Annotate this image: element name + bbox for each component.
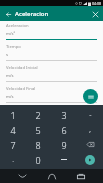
staticText: Aceleracion [6, 23, 29, 29]
staticText: 7 [10, 139, 16, 151]
staticText: , [89, 125, 91, 135]
button[interactable]: Back [3, 9, 13, 19]
staticText: 6 [61, 124, 67, 136]
button[interactable]: Back [14, 169, 30, 183]
staticText: m/s [6, 94, 14, 100]
staticText: 9 [61, 139, 67, 151]
staticText: 04:08 [92, 1, 101, 6]
staticText: m/s² [6, 31, 15, 37]
button[interactable]: Close [90, 9, 100, 19]
staticText: Aceleracion [15, 10, 49, 18]
button[interactable]: Backspace [77, 137, 103, 152]
button[interactable]: Calculate [83, 89, 98, 104]
button[interactable]: . [0, 152, 25, 167]
button[interactable]: Recents [73, 169, 89, 183]
button[interactable]: Enter [77, 152, 103, 167]
staticText: 4 [10, 124, 16, 136]
staticText: 5 [35, 124, 41, 136]
button[interactable]: 3 [51, 107, 77, 122]
button[interactable] [51, 152, 77, 167]
button[interactable]: 0 [25, 152, 51, 167]
button[interactable]: 5 [25, 122, 51, 137]
staticText: 3 [61, 109, 67, 121]
staticText: Velocidad Inicial [6, 65, 38, 71]
button[interactable]: 1 [0, 107, 25, 122]
staticText: 2 [35, 109, 41, 121]
button[interactable]: , [77, 122, 103, 137]
staticText: 8 [35, 139, 41, 151]
staticText: Velocidad Final [6, 86, 36, 92]
staticText: m/s [6, 73, 14, 79]
button[interactable]: 2 [25, 107, 51, 122]
button[interactable]: Velocidad Final [6, 86, 97, 103]
button[interactable]: 6 [51, 122, 77, 137]
staticText: Tiempo [6, 44, 21, 50]
staticText: - [89, 110, 92, 120]
button[interactable]: Aceleracion [6, 23, 97, 40]
button[interactable]: 9 [51, 137, 77, 152]
staticText: 1 [10, 109, 16, 121]
button[interactable]: 7 [0, 137, 25, 152]
button[interactable]: - [77, 107, 103, 122]
button[interactable]: Velocidad Inicial [6, 65, 97, 82]
staticText: . [12, 155, 14, 165]
button[interactable]: 8 [25, 137, 51, 152]
staticText: 0 [35, 154, 41, 166]
button[interactable]: Home [44, 169, 60, 183]
button[interactable]: Tiempo [6, 44, 97, 61]
button[interactable]: 4 [0, 122, 25, 137]
staticText: s [6, 52, 9, 58]
